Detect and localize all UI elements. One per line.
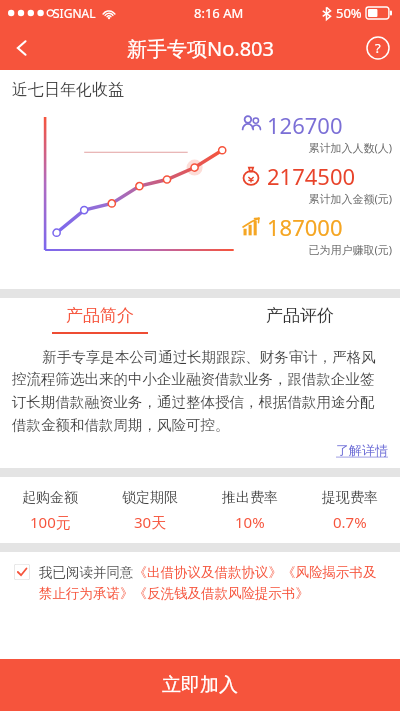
button[interactable]: Help (356, 26, 400, 70)
staticText: 10% (235, 512, 265, 532)
staticText: 2174500 (267, 161, 356, 191)
staticText: 新手专享是本公司通过长期跟踪、财务审计，严格风控流程筛选出来的中小企业融资借款业… (12, 346, 388, 434)
staticText: 30天 (134, 512, 167, 532)
staticText: 提现费率 (322, 489, 378, 507)
staticText: 了解详情 (336, 442, 388, 458)
staticText: 8:16 AM (194, 4, 244, 22)
button[interactable]: Back (0, 26, 44, 70)
staticText: 锁定期限 (122, 489, 178, 507)
staticText: 累计加入金额(元) (240, 191, 392, 206)
staticText: 已为用户赚取(元) (240, 242, 392, 257)
staticText: 近七日年化收益 (12, 80, 124, 100)
staticText: 0.7% (333, 512, 367, 532)
button[interactable]: 了解详情 (336, 442, 388, 458)
staticText: 起购金额 (22, 489, 78, 507)
staticText: 新手专项No.803 (127, 35, 274, 62)
button[interactable]: 产品评价 (200, 298, 400, 340)
staticText: 产品简介 (66, 305, 134, 326)
button[interactable]: 立即加入 (0, 659, 400, 711)
staticText: 累计加入人数(人) (240, 140, 392, 155)
staticText: 187000 (267, 212, 343, 242)
staticText: 推出费率 (222, 489, 278, 507)
button[interactable]: 我已阅读并同意《出借协议及借款协议》《风险揭示书及禁止行为承诺》《反洗钱及借款风… (14, 564, 388, 602)
staticText: SIGNAL (53, 5, 96, 21)
staticText: 50% (336, 4, 362, 22)
staticText: 立即加入 (162, 673, 238, 697)
button[interactable]: 产品简介 (0, 298, 200, 340)
staticText: 126700 (267, 110, 343, 140)
staticText: ? (375, 39, 381, 57)
staticText: 100元 (30, 512, 71, 532)
staticText: 产品评价 (266, 305, 334, 326)
staticText: 我已阅读并同意《出借协议及借款协议》《风险揭示书及禁止行为承诺》《反洗钱及借款风… (39, 564, 388, 602)
